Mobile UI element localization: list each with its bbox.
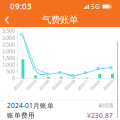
staticText: 未结清	[98, 102, 113, 109]
staticText: 2,000	[2, 48, 15, 55]
staticText: 2023-11	[76, 82, 89, 88]
staticText: 2023-03	[25, 82, 38, 88]
button[interactable]: 2024-01月账单	[0, 100, 120, 120]
staticText: 1,000	[2, 61, 15, 68]
staticText: 2024-03	[101, 82, 114, 88]
staticText: 气费账单	[42, 14, 78, 26]
staticText: 2023-09	[63, 82, 76, 88]
staticText: 09:03	[10, 1, 32, 12]
staticText: 2023-07	[50, 82, 63, 88]
staticText: 5G	[91, 2, 100, 11]
staticText: 2024-01	[89, 82, 102, 88]
staticText: 3,000	[2, 34, 15, 41]
button[interactable]: Back	[0, 13, 14, 27]
staticText: 2023-01	[12, 82, 25, 88]
staticText: 0	[12, 75, 15, 82]
staticText: 2024-01月账单	[7, 101, 54, 110]
staticText: 2,500	[2, 41, 15, 48]
staticText: 账单费用	[7, 111, 35, 120]
staticText: ¥230.87	[87, 111, 113, 120]
staticText: 500	[6, 68, 15, 75]
staticText: 1,500	[2, 54, 15, 61]
staticText: 3,500	[2, 27, 15, 34]
staticText: 2023-05	[37, 82, 50, 88]
